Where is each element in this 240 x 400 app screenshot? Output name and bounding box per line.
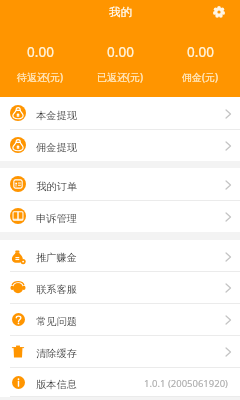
- button[interactable]: Settings: [210, 3, 228, 21]
- staticText: 本金提现: [36, 109, 77, 122]
- button[interactable]: 佣金提现: [0, 129, 240, 161]
- button[interactable]: 推广赚金: [0, 240, 240, 271]
- staticText: 我的: [109, 5, 132, 19]
- button[interactable]: 0.00: [80, 24, 160, 97]
- staticText: 我的订单: [36, 180, 77, 193]
- button[interactable]: 我的订单: [0, 168, 240, 200]
- staticText: 佣金(元): [182, 70, 218, 84]
- button[interactable]: 0.00: [160, 24, 240, 97]
- button[interactable]: 清除缓存: [0, 335, 240, 367]
- staticText: 已返还(元): [97, 70, 143, 84]
- button[interactable]: 版本信息: [0, 367, 240, 396]
- staticText: 常见问题: [36, 315, 77, 328]
- button[interactable]: 常见问题: [0, 303, 240, 335]
- staticText: 0.00: [107, 43, 134, 61]
- staticText: 申诉管理: [36, 212, 77, 225]
- staticText: 1.0.1 (2005061920): [144, 377, 228, 390]
- button[interactable]: 0.00: [0, 24, 80, 97]
- staticText: 清除缓存: [36, 347, 77, 360]
- staticText: 待返还(元): [17, 70, 63, 84]
- staticText: 0.00: [187, 43, 214, 61]
- button[interactable]: 本金提现: [0, 97, 240, 129]
- staticText: 佣金提现: [36, 141, 77, 154]
- staticText: 联系客服: [36, 283, 77, 296]
- staticText: 版本信息: [36, 378, 77, 391]
- staticText: 推广赚金: [36, 251, 77, 264]
- button[interactable]: 联系客服: [0, 271, 240, 303]
- staticText: 0.00: [27, 43, 54, 61]
- button[interactable]: 申诉管理: [0, 200, 240, 232]
